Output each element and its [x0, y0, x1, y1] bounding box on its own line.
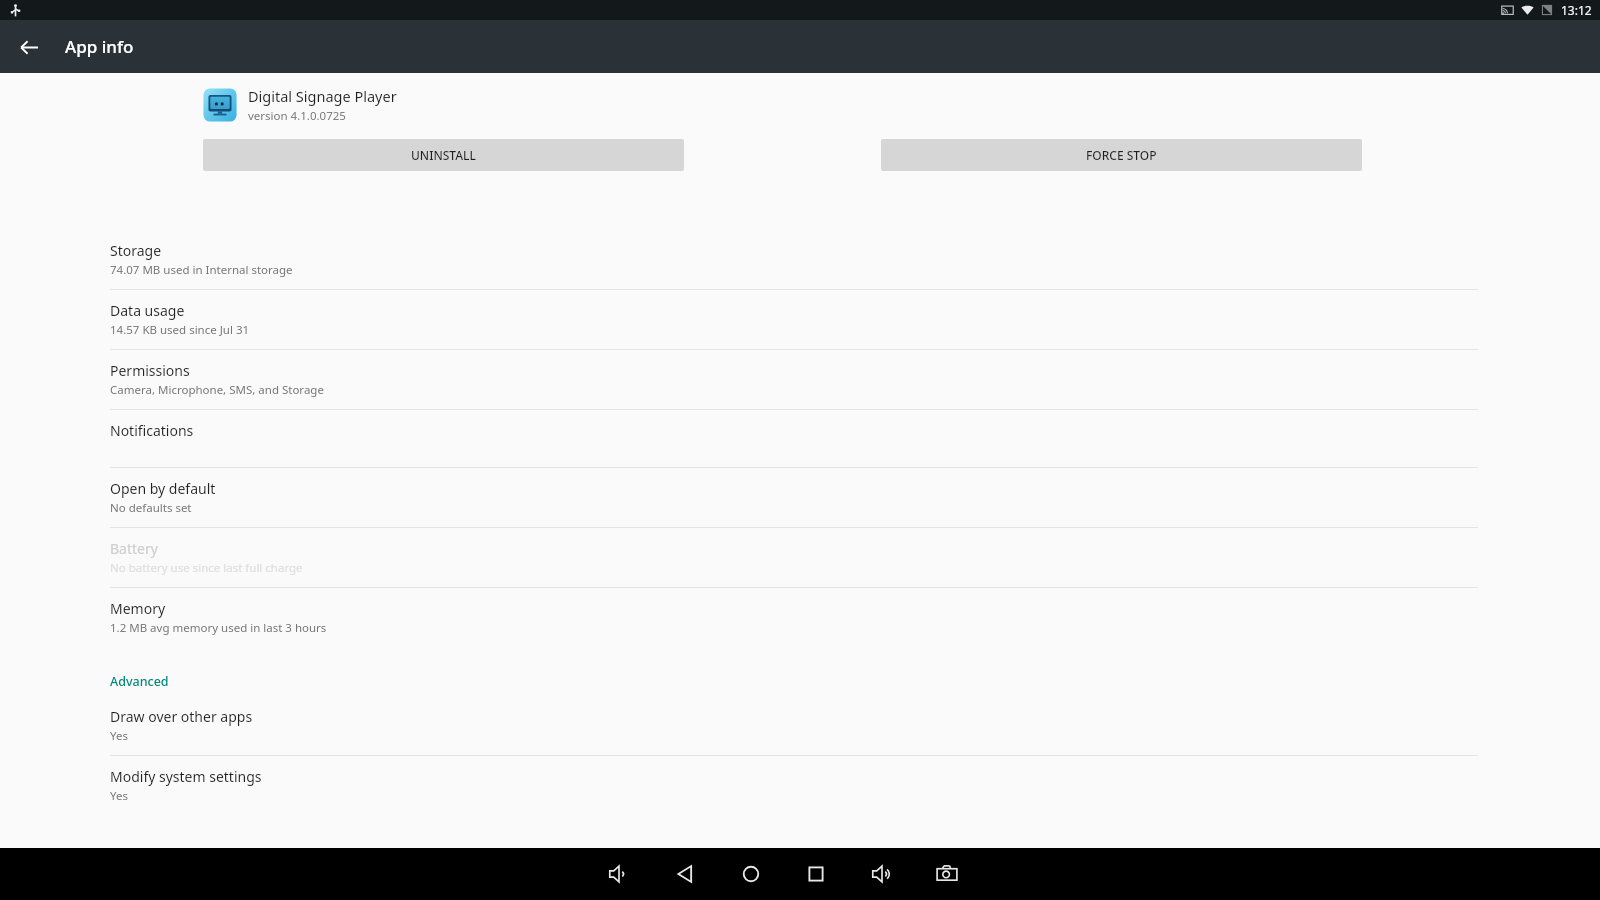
button[interactable]: Draw over other apps	[0, 696, 1600, 755]
button[interactable]: FORCE STOP	[881, 139, 1362, 171]
staticText: Draw over other apps	[110, 707, 253, 726]
button[interactable]: Back	[12, 30, 46, 64]
staticText: Memory	[110, 599, 166, 618]
staticText: 1.2 MB avg memory used in last 3 hours	[110, 620, 327, 636]
staticText: Notifications	[110, 421, 194, 440]
staticText: Battery	[110, 539, 158, 558]
staticText: Yes	[110, 728, 128, 744]
staticText: UNINSTALL	[411, 147, 476, 163]
button[interactable]: Home	[728, 851, 774, 897]
staticText: Advanced	[110, 673, 169, 690]
staticText: Permissions	[110, 361, 190, 380]
staticText: 74.07 MB used in Internal storage	[110, 262, 293, 278]
staticText: Data usage	[110, 301, 185, 320]
button[interactable]: Data usage	[0, 290, 1600, 349]
staticText: Yes	[110, 788, 128, 804]
staticText: 14.57 KB used since Jul 31	[110, 322, 250, 338]
button[interactable]: Recents	[793, 851, 839, 897]
button[interactable]: Back	[662, 851, 708, 897]
staticText: No battery use since last full charge	[110, 560, 303, 576]
staticText: Open by default	[110, 479, 216, 498]
button[interactable]: UNINSTALL	[203, 139, 684, 171]
staticText: Storage	[110, 241, 162, 260]
button[interactable]: Screenshot	[924, 851, 970, 897]
button[interactable]: Volume down	[596, 851, 642, 897]
button[interactable]: Memory	[0, 588, 1600, 647]
button[interactable]: Modify system settings	[0, 756, 1600, 815]
button[interactable]: Permissions	[0, 350, 1600, 409]
staticText: App info	[65, 35, 134, 58]
staticText: No defaults set	[110, 500, 192, 516]
staticText: Digital Signage Player	[248, 86, 397, 106]
button[interactable]: Storage	[0, 230, 1600, 289]
staticText: 13:12	[1561, 2, 1592, 18]
staticText: FORCE STOP	[1086, 147, 1157, 163]
staticText: Modify system settings	[110, 767, 262, 786]
button[interactable]: Open by default	[0, 468, 1600, 527]
button[interactable]: Volume up	[859, 851, 905, 897]
button[interactable]: Notifications	[0, 410, 1600, 467]
staticText: Camera, Microphone, SMS, and Storage	[110, 382, 324, 398]
staticText: version 4.1.0.0725	[248, 108, 346, 124]
